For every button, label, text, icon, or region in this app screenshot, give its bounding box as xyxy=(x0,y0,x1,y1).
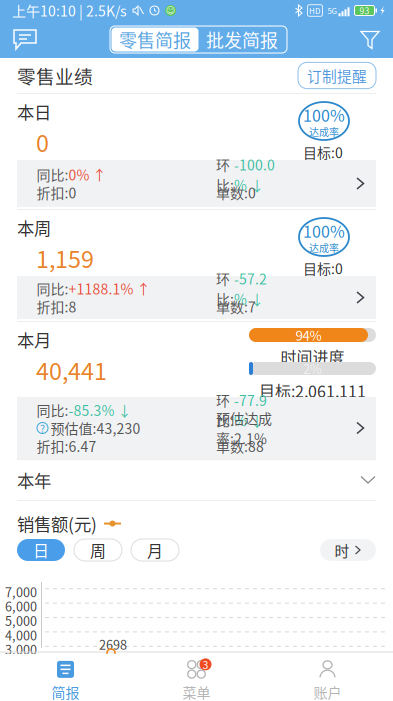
staticText: 5,000 xyxy=(5,611,37,630)
staticText: 环比: xyxy=(216,390,234,430)
button[interactable]: 简报 xyxy=(0,655,131,701)
staticText: -77.9% ↓ xyxy=(234,390,267,430)
button[interactable]: 同比: xyxy=(17,276,376,319)
staticText: 时间进度 xyxy=(280,345,344,368)
staticText: 达成率 xyxy=(309,124,339,139)
staticText: 40,441 xyxy=(36,353,107,387)
staticText: 日 xyxy=(33,538,49,562)
staticText: 预估达成率:2.1% xyxy=(216,408,272,448)
staticText: 目标:2,061,111 xyxy=(259,379,366,402)
staticText: 单数:88 xyxy=(216,436,264,456)
button[interactable]: Filter xyxy=(360,29,380,49)
staticText: 100% xyxy=(303,103,345,126)
staticText: 2698 xyxy=(99,635,127,653)
staticText: 同比: xyxy=(36,164,68,185)
staticText: 3,000 xyxy=(5,640,37,658)
staticText: 单数:7 xyxy=(216,296,256,317)
button[interactable]: 日 xyxy=(17,539,65,561)
staticText: 环比: xyxy=(216,268,234,309)
staticText: 本周 xyxy=(17,215,51,240)
staticText: 折扣:8 xyxy=(36,296,76,317)
staticText: 批发简报 xyxy=(206,26,278,53)
staticText: 销售额(元) xyxy=(17,511,97,536)
staticText: 订制提醒 xyxy=(307,65,367,86)
button[interactable]: 3 xyxy=(131,655,262,701)
staticText: 时 xyxy=(334,539,349,561)
staticText: 本年 xyxy=(17,467,51,493)
staticText: 本日 xyxy=(17,99,51,124)
staticText: 0% ↑ xyxy=(68,164,106,185)
staticText: 简报 xyxy=(51,682,79,701)
staticText: 单数:0 xyxy=(216,182,256,203)
staticText: ☺ xyxy=(165,5,175,16)
staticText: 月 xyxy=(147,538,163,562)
staticText: 1,159 xyxy=(36,241,94,275)
button[interactable]: 月 xyxy=(131,539,179,561)
staticText: 零售业绩 xyxy=(17,62,93,89)
staticText: 菜单 xyxy=(182,682,210,701)
button[interactable]: 同比: xyxy=(17,397,376,459)
button[interactable]: 账户 xyxy=(262,655,393,701)
staticText: 零售简报 xyxy=(119,26,191,53)
staticText: 100% xyxy=(303,219,345,242)
button[interactable]: 零售简报 xyxy=(111,27,198,51)
staticText: 预估值:43,230 xyxy=(50,418,140,438)
staticText: 同比: xyxy=(36,400,68,420)
staticText: 目标:0 xyxy=(303,142,343,162)
staticText: 折扣:0 xyxy=(36,182,76,203)
button[interactable]: 周 xyxy=(74,539,122,561)
staticText: 周 xyxy=(90,538,106,562)
staticText: 上午10:10 | 2.5K/s xyxy=(12,0,127,21)
staticText: +1188.1% ↑ xyxy=(68,278,150,299)
button[interactable]: Messages xyxy=(13,29,37,50)
staticText: 环比: xyxy=(216,154,234,195)
staticText: -100.0% ↓ xyxy=(234,154,275,195)
staticText: 3 xyxy=(202,657,208,672)
button[interactable]: 时 xyxy=(320,539,376,561)
button[interactable]: 本年 xyxy=(0,460,393,500)
staticText: 2% xyxy=(303,359,322,378)
staticText: 折扣:6.47 xyxy=(36,436,96,456)
staticText: 93 xyxy=(359,4,369,17)
button[interactable]: 订制提醒 xyxy=(298,62,376,89)
button[interactable]: 批发简报 xyxy=(198,27,285,51)
staticText: -85.3% ↓ xyxy=(68,400,131,420)
staticText: 4,000 xyxy=(5,626,37,644)
staticText: 达成率 xyxy=(309,240,339,255)
staticText: 5G xyxy=(327,5,337,16)
staticText: 6,000 xyxy=(5,597,37,615)
staticText: 7,000 xyxy=(5,582,37,601)
staticText: 账户 xyxy=(313,682,341,701)
staticText: 0 xyxy=(36,125,49,159)
button[interactable]: 同比: xyxy=(17,160,376,207)
staticText: 本月 xyxy=(17,327,51,352)
staticText: HD xyxy=(309,5,321,16)
staticText: ? xyxy=(40,420,45,436)
staticText: 94% xyxy=(295,325,321,345)
staticText: 目标:0 xyxy=(303,258,343,278)
staticText: 同比: xyxy=(36,278,68,299)
staticText: -57.2% ↓ xyxy=(234,268,267,309)
